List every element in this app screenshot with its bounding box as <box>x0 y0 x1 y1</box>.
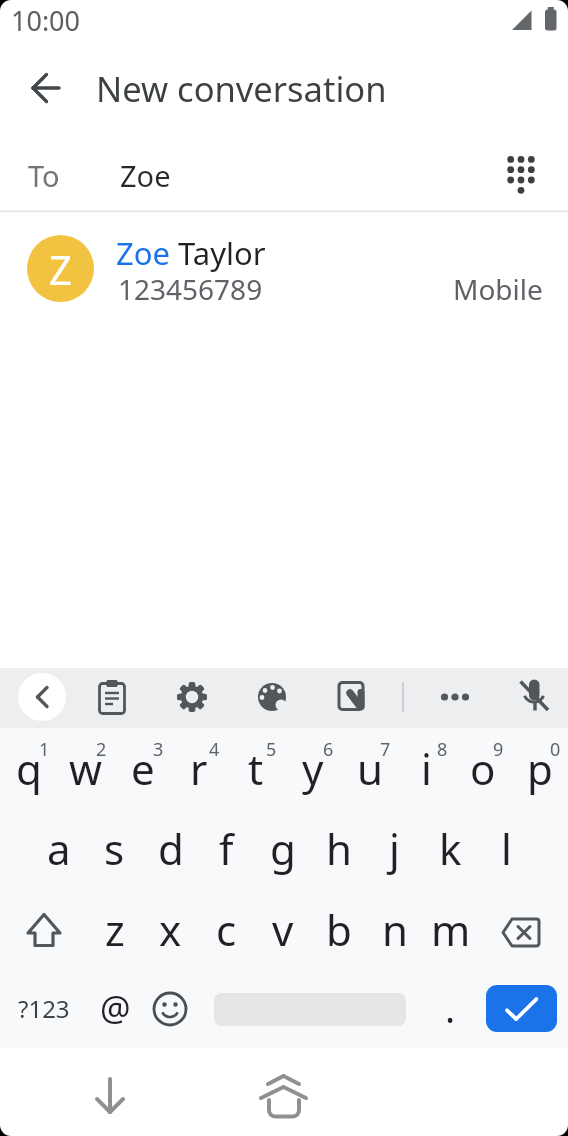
staticText: w <box>69 740 103 797</box>
button[interactable] <box>9 892 79 968</box>
button[interactable]: i <box>399 730 454 806</box>
button[interactable] <box>431 673 479 721</box>
button[interactable]: f <box>199 810 254 886</box>
staticText: Z <box>49 242 72 296</box>
staticText: Zoe <box>120 156 171 195</box>
staticText: k <box>439 820 462 877</box>
button[interactable] <box>509 673 557 721</box>
staticText: Zoe Taylor <box>116 232 266 274</box>
button[interactable] <box>23 64 71 112</box>
button[interactable]: b <box>311 891 366 967</box>
button[interactable] <box>328 673 376 721</box>
staticText: v <box>272 901 294 958</box>
button[interactable] <box>88 673 136 721</box>
button[interactable]: u <box>342 730 397 806</box>
staticText: . <box>445 982 456 1034</box>
button[interactable]: k <box>423 810 478 886</box>
staticText: 0 <box>550 737 561 762</box>
staticText: 1 <box>39 737 50 762</box>
button[interactable] <box>497 151 545 199</box>
button[interactable] <box>142 971 198 1047</box>
staticText: ?123 <box>18 992 70 1025</box>
button[interactable]: h <box>311 810 366 886</box>
button[interactable]: s <box>87 810 142 886</box>
staticText: d <box>158 820 184 877</box>
staticText: Mobile <box>453 270 543 308</box>
staticText: o <box>470 740 496 797</box>
button[interactable]: ?123 <box>9 970 79 1046</box>
button[interactable] <box>252 1064 316 1128</box>
button[interactable]: j <box>367 810 422 886</box>
staticText: e <box>131 740 155 797</box>
staticText: l <box>501 820 512 877</box>
staticText: 4 <box>209 737 220 762</box>
button[interactable]: v <box>255 891 310 967</box>
button[interactable]: p <box>512 730 567 806</box>
staticText: 5 <box>266 737 277 762</box>
staticText: q <box>16 740 42 797</box>
button[interactable]: c <box>199 891 254 967</box>
staticText: @ <box>100 985 131 1031</box>
button[interactable]: o <box>455 730 510 806</box>
staticText: r <box>190 740 208 797</box>
staticText: g <box>270 820 296 877</box>
button[interactable]: l <box>479 810 534 886</box>
staticText: New conversation <box>96 65 387 112</box>
button[interactable]: z <box>87 891 142 967</box>
staticText: 3 <box>153 737 164 762</box>
staticText: f <box>219 820 234 877</box>
staticText: 10:00 <box>11 2 81 39</box>
button[interactable]: y <box>285 730 340 806</box>
button[interactable]: w <box>58 730 113 806</box>
staticText: x <box>159 901 182 958</box>
button[interactable]: Z <box>0 214 568 322</box>
button[interactable]: q <box>1 730 56 806</box>
button[interactable]: m <box>423 891 478 967</box>
staticText: b <box>326 901 352 958</box>
staticText: z <box>105 901 125 958</box>
staticText: 9 <box>493 737 504 762</box>
button[interactable]: @ <box>88 970 143 1046</box>
staticText: 7 <box>380 737 391 762</box>
staticText: 123456789 <box>118 270 263 308</box>
staticText: s <box>104 820 125 877</box>
button[interactable]: a <box>31 810 86 886</box>
button[interactable] <box>78 1064 142 1128</box>
staticText: 6 <box>323 737 334 762</box>
button[interactable]: d <box>143 810 198 886</box>
button[interactable]: . <box>423 970 478 1046</box>
staticText: y <box>302 740 324 797</box>
staticText: c <box>216 901 237 958</box>
button[interactable]: t <box>228 730 283 806</box>
staticText: h <box>326 820 352 877</box>
button[interactable] <box>481 895 561 971</box>
staticText: u <box>357 740 383 797</box>
button[interactable] <box>486 985 557 1032</box>
button[interactable]: x <box>143 891 198 967</box>
staticText: m <box>431 901 471 958</box>
staticText: 8 <box>437 737 448 762</box>
button[interactable] <box>248 673 296 721</box>
staticText: To <box>28 156 60 195</box>
button[interactable]: r <box>171 730 226 806</box>
button[interactable] <box>168 673 216 721</box>
staticText: p <box>527 740 553 797</box>
staticText: a <box>47 820 71 877</box>
staticText: i <box>421 740 432 797</box>
staticText: 2 <box>96 737 107 762</box>
staticText: j <box>389 820 400 877</box>
button[interactable]: e <box>115 730 170 806</box>
button[interactable]: n <box>367 891 422 967</box>
button[interactable] <box>18 673 66 721</box>
staticText: t <box>248 740 264 797</box>
staticText: n <box>382 901 408 958</box>
button[interactable]: g <box>255 810 310 886</box>
